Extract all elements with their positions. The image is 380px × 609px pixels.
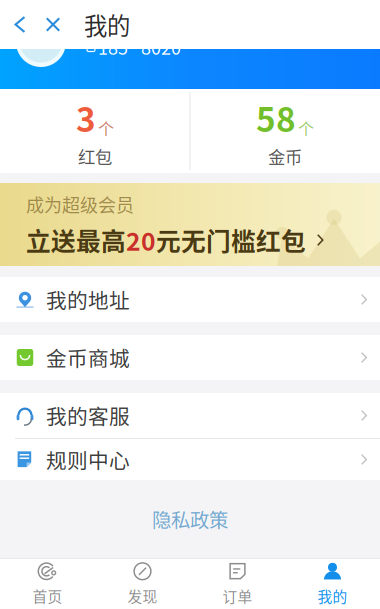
staticText: 规则中心	[46, 444, 130, 474]
staticText: 金币	[268, 144, 302, 169]
button[interactable]: 我的	[285, 558, 380, 609]
staticText: 个	[298, 116, 314, 140]
staticText: 金币商城	[46, 342, 130, 372]
button[interactable]: 发现	[95, 558, 190, 609]
staticText: 20	[126, 222, 156, 258]
staticText: 58	[256, 93, 296, 142]
staticText: 成为超级会员	[26, 191, 134, 217]
button[interactable]: 返回	[4, 0, 36, 49]
staticText: 元无门槛红包	[156, 222, 306, 258]
staticText: 8020	[141, 34, 181, 60]
staticText: 立送最高	[26, 222, 126, 258]
staticText: 我的	[84, 8, 130, 41]
staticText: 185	[98, 34, 128, 60]
staticText: 红包	[78, 144, 112, 169]
button[interactable]: 我的客服	[0, 393, 380, 438]
button[interactable]: 首页	[0, 558, 95, 609]
button[interactable]: 订单	[190, 558, 285, 609]
staticText: 订单	[222, 585, 252, 606]
button[interactable]: 金币商城	[0, 335, 380, 380]
button[interactable]: 隐私政策	[136, 495, 244, 543]
button[interactable]: 我的地址	[0, 277, 380, 322]
staticText: 个	[98, 116, 114, 140]
staticText: 首页	[32, 585, 62, 606]
button[interactable]: 规则中心	[0, 439, 380, 480]
button[interactable]: 关闭	[36, 0, 70, 49]
staticText: 发现	[127, 585, 157, 606]
staticText: 隐私政策	[152, 505, 228, 533]
staticText: 我的	[317, 585, 347, 606]
staticText: 3	[76, 93, 96, 142]
staticText: 我的地址	[46, 284, 130, 314]
button[interactable]: 成为超级会员	[0, 183, 380, 266]
staticText: 我的客服	[46, 400, 130, 430]
